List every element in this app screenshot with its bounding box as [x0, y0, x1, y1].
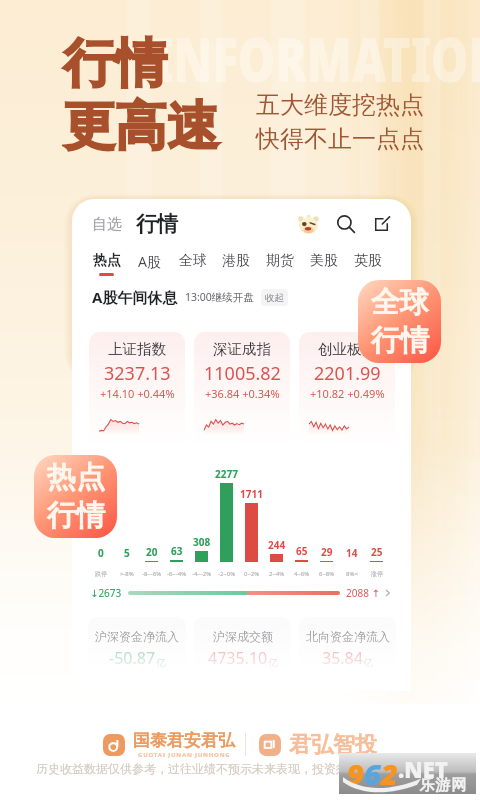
- staticText: 244: [268, 538, 286, 552]
- staticText: 2088 ↑: [346, 586, 380, 600]
- button[interactable]: 期货: [258, 252, 302, 273]
- button[interactable]: 上证指数: [89, 332, 185, 448]
- button[interactable]: 创业板指: [299, 332, 395, 448]
- button[interactable]: 全球: [358, 280, 441, 363]
- staticText: 9: [347, 754, 364, 793]
- staticText: 0~2%: [244, 570, 260, 578]
- button[interactable]: 北向资金净流入: [299, 617, 396, 679]
- staticText: 沪深资金净流入: [95, 629, 179, 644]
- staticText: INFORMATION: [153, 16, 480, 100]
- staticText: 热点: [47, 459, 105, 496]
- button[interactable]: 自选: [92, 215, 122, 234]
- staticText: +10.82 +0.49%: [310, 386, 385, 401]
- staticText: 308: [193, 535, 211, 549]
- staticText: 0: [98, 546, 104, 560]
- staticText: 11005.82: [204, 361, 281, 386]
- staticText: 亿: [156, 656, 166, 669]
- staticText: -50.87: [109, 647, 156, 669]
- staticText: 25: [371, 545, 383, 559]
- staticText: 2201.99: [314, 361, 381, 386]
- staticText: 1711: [240, 487, 263, 501]
- staticText: 35.84: [322, 647, 363, 669]
- staticText: 更高速: [63, 94, 219, 160]
- staticText: 3237.13: [104, 361, 171, 386]
- staticText: ↓2673: [90, 586, 122, 600]
- staticText: 4~6%: [294, 570, 310, 578]
- staticText: A股午间休息: [92, 287, 178, 307]
- staticText: 期货: [266, 252, 294, 270]
- staticText: 2: [381, 754, 398, 793]
- staticText: 8%<: [346, 570, 358, 578]
- staticText: 4735.10: [208, 647, 268, 669]
- staticText: -2~0%: [218, 570, 236, 578]
- button[interactable]: 美股: [302, 252, 346, 273]
- button[interactable]: 港股: [214, 252, 258, 273]
- staticText: 五大维度挖热点: [256, 90, 424, 120]
- button[interactable]: 深证成指: [194, 332, 290, 448]
- staticText: 涨停: [371, 570, 383, 578]
- staticText: 收起: [265, 292, 284, 304]
- staticText: 快得不止一点点: [256, 124, 424, 154]
- staticText: 6~8%: [319, 570, 335, 578]
- staticText: 65: [296, 544, 308, 558]
- button[interactable]: 热点: [34, 455, 117, 538]
- staticText: 英股: [354, 252, 382, 270]
- staticText: .NET: [398, 754, 448, 784]
- staticText: A股: [138, 252, 161, 271]
- staticText: >-8%: [120, 570, 134, 578]
- button[interactable]: 君弘智投: [259, 731, 377, 759]
- staticText: 创业板指: [318, 340, 376, 358]
- staticText: 63: [171, 544, 183, 558]
- staticText: 历史收益数据仅供参考，过往业绩不预示未来表现，投资须谨慎，请注意风险: [36, 761, 444, 776]
- staticText: 亿: [363, 656, 373, 669]
- button[interactable]: Edit: [373, 216, 390, 233]
- staticText: 20: [146, 545, 158, 559]
- staticText: 行情: [371, 322, 429, 359]
- button[interactable]: 英股: [346, 252, 390, 273]
- staticText: 国泰君安君弘: [133, 730, 235, 751]
- staticText: 乐游网: [419, 776, 467, 795]
- staticText: +36.84 +0.34%: [205, 386, 280, 401]
- staticText: 14: [346, 546, 358, 560]
- staticText: 全球: [371, 284, 429, 321]
- staticText: 6: [364, 754, 381, 793]
- staticText: 热点: [93, 252, 121, 270]
- staticText: -4~-2%: [192, 570, 212, 578]
- staticText: 深证成指: [213, 340, 271, 358]
- staticText: 行情: [63, 31, 167, 97]
- staticText: 君弘智投: [289, 731, 377, 759]
- button[interactable]: 收起: [265, 289, 284, 306]
- staticText: +14.10 +0.44%: [100, 386, 175, 401]
- staticText: 行情: [47, 497, 105, 534]
- button[interactable]: 热点: [85, 252, 128, 276]
- staticText: 5: [124, 546, 130, 560]
- button[interactable]: 国泰君安君弘: [103, 730, 235, 759]
- staticText: 2277: [215, 467, 238, 481]
- staticText: 上证指数: [108, 340, 166, 358]
- staticText: 北向资金净流入: [306, 629, 390, 644]
- staticText: 亿: [268, 656, 278, 669]
- button[interactable]: 沪深资金净流入: [88, 617, 186, 679]
- staticText: GUOTAI JUNAN JUNHONG: [138, 751, 231, 759]
- button[interactable]: 全球: [171, 252, 214, 273]
- staticText: 29: [321, 545, 333, 559]
- staticText: 跌停: [95, 570, 107, 578]
- button[interactable]: Search: [336, 214, 356, 234]
- staticText: -8~-6%: [142, 570, 162, 578]
- button[interactable]: 行情: [136, 211, 178, 237]
- button[interactable]: 沪深成交额: [194, 617, 291, 679]
- button[interactable]: A股: [128, 252, 171, 274]
- staticText: 2~4%: [269, 570, 285, 578]
- button[interactable]: Mascot: [298, 214, 319, 235]
- staticText: -6~-4%: [167, 570, 187, 578]
- staticText: 沪深成交额: [213, 629, 273, 644]
- staticText: 13:00继续开盘: [185, 290, 254, 304]
- staticText: 美股: [310, 252, 338, 270]
- staticText: 全球: [179, 252, 207, 270]
- staticText: 港股: [222, 252, 250, 270]
